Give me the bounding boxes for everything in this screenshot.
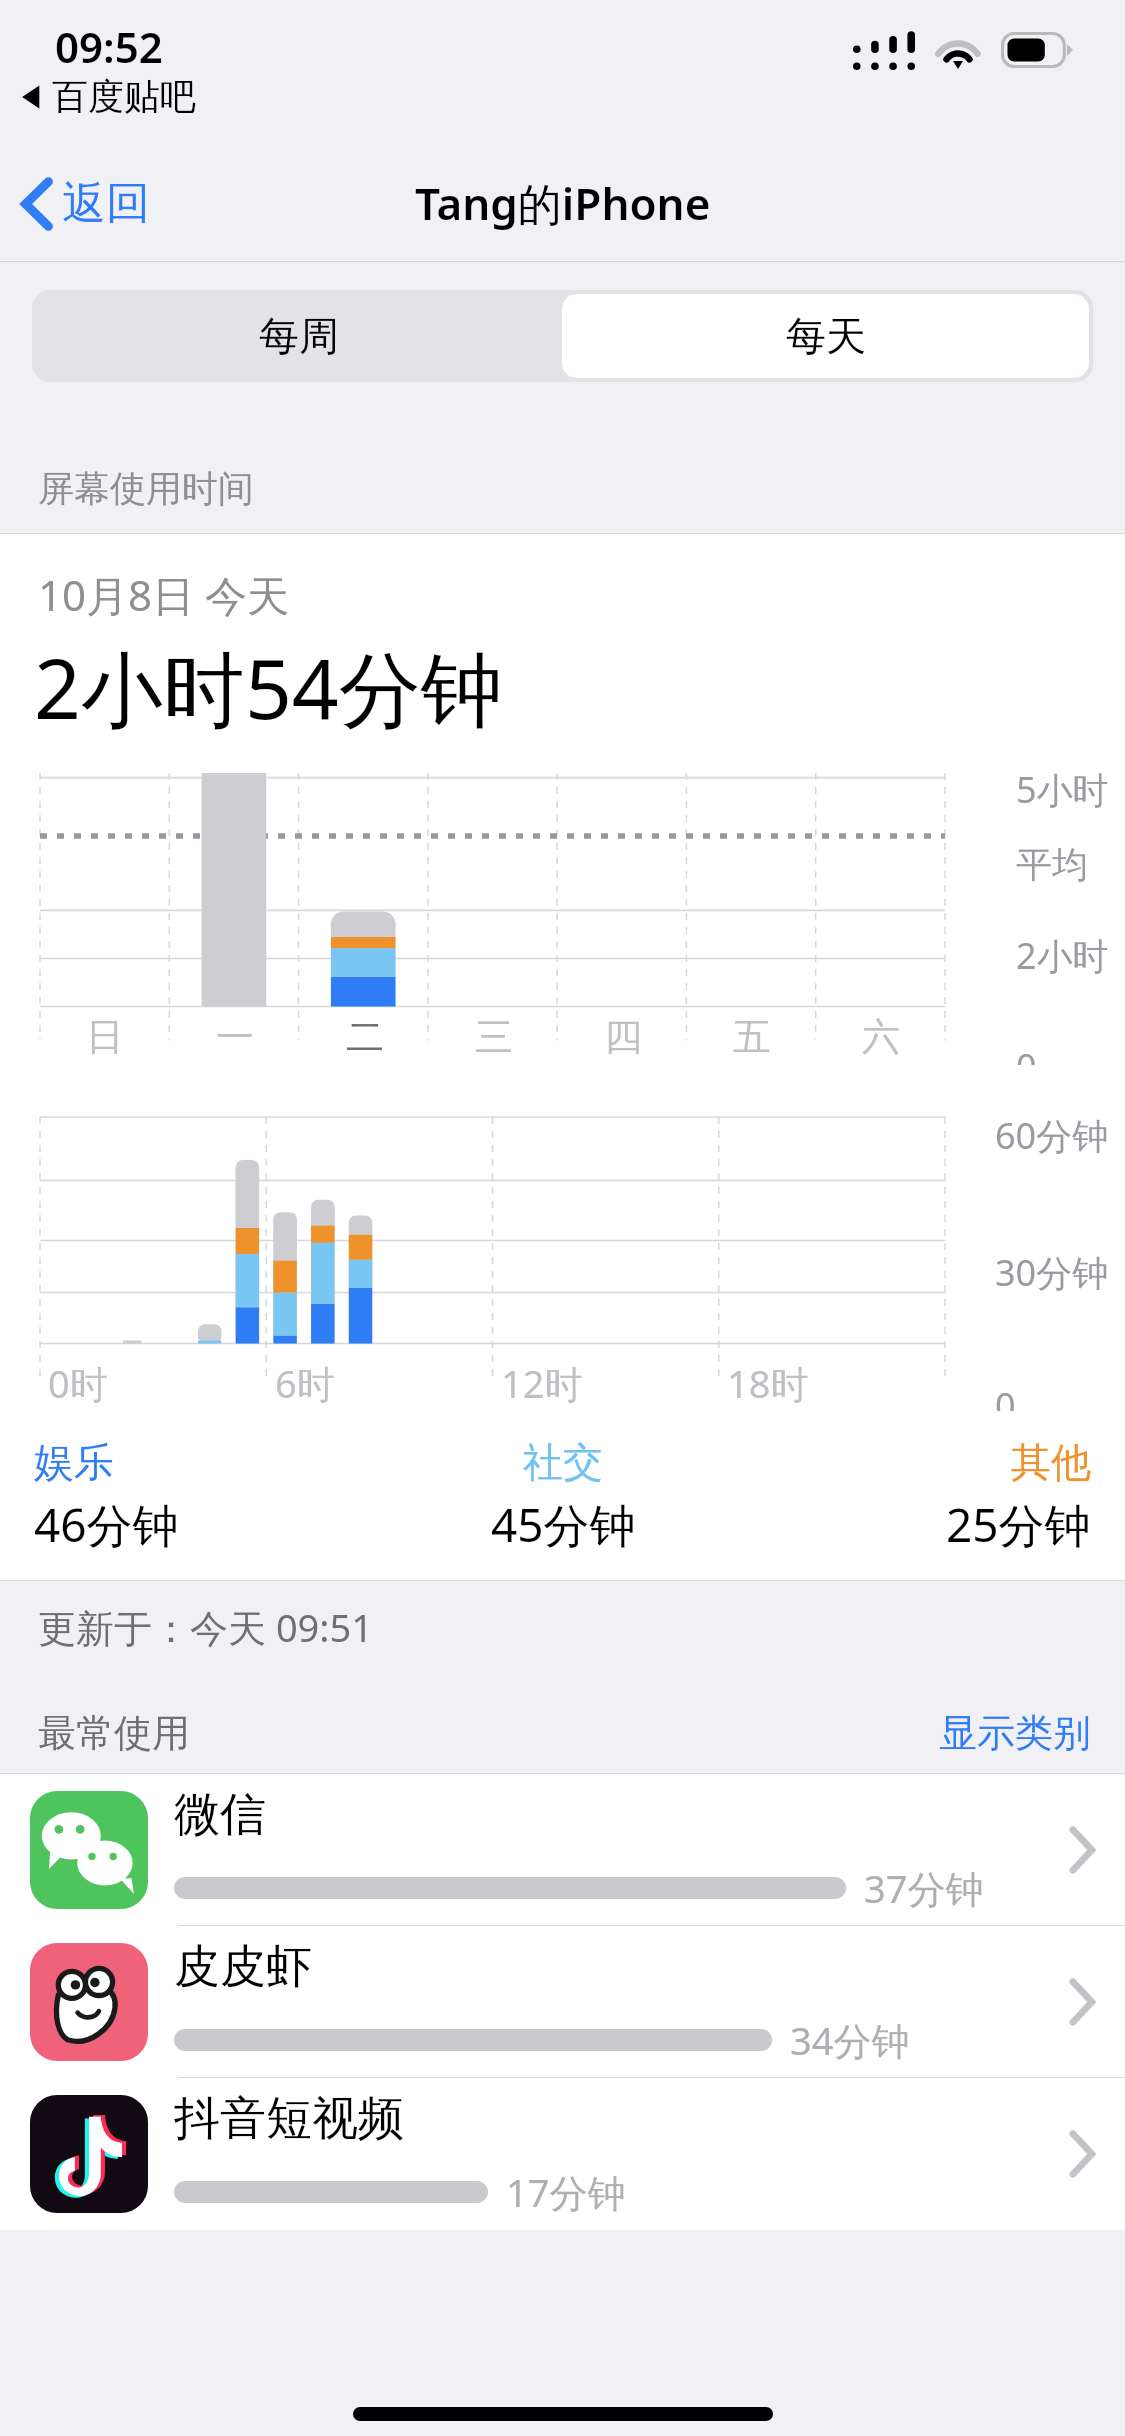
staticText: 17分钟	[506, 2166, 626, 2218]
staticText: 屏幕使用时间	[38, 466, 254, 511]
staticText: 18时	[727, 1357, 809, 1409]
staticText: 09:52	[55, 18, 163, 75]
staticText: 二	[346, 1013, 384, 1061]
staticText: 平均	[1016, 842, 1088, 887]
staticText: 微信	[174, 1786, 266, 1844]
staticText: Tang的iPhone	[415, 173, 711, 233]
staticText: 抖音短视频	[174, 2090, 404, 2148]
button[interactable]: 皮皮虾	[0, 1926, 1125, 2078]
staticText: 2小时	[1016, 931, 1109, 980]
staticText: 0	[1016, 1042, 1037, 1065]
staticText: 社交	[523, 1437, 603, 1487]
staticText: 一	[216, 1013, 254, 1061]
staticText: 10月8日 今天	[38, 566, 289, 623]
staticText: 12时	[501, 1357, 583, 1409]
staticText: 五	[733, 1013, 771, 1061]
button[interactable]: 其他	[739, 1437, 1091, 1556]
staticText: 46分钟	[34, 1493, 179, 1556]
staticText: 其他	[1011, 1437, 1091, 1487]
staticText: 37分钟	[864, 1862, 984, 1914]
staticText: 更新于：今天 09:51	[38, 1601, 374, 1653]
button[interactable]: 娱乐	[34, 1437, 387, 1556]
button[interactable]: 返回	[0, 166, 174, 241]
staticText: 6时	[275, 1357, 335, 1409]
staticText: 每周	[259, 311, 339, 361]
staticText: 皮皮虾	[174, 1938, 312, 1996]
staticText: 三	[475, 1013, 513, 1061]
staticText: 六	[862, 1013, 900, 1061]
button[interactable]: 每周	[36, 294, 562, 378]
staticText: 娱乐	[34, 1437, 114, 1487]
staticText: 百度贴吧	[52, 74, 196, 119]
staticText: 25分钟	[946, 1493, 1091, 1556]
staticText: 日	[86, 1013, 124, 1061]
staticText: 0时	[48, 1357, 108, 1409]
staticText: 34分钟	[790, 2014, 910, 2066]
staticText: 0	[995, 1381, 1016, 1411]
button[interactable]: 每天	[562, 294, 1089, 378]
staticText: 45分钟	[491, 1493, 636, 1556]
button[interactable]: 抖音短视频	[0, 2078, 1125, 2230]
staticText: 返回	[62, 176, 150, 231]
staticText: 30分钟	[995, 1248, 1109, 1297]
staticText: 2小时54分钟	[34, 631, 503, 743]
staticText: 60分钟	[995, 1111, 1109, 1160]
staticText: 四	[604, 1013, 642, 1061]
staticText: 5小时	[1016, 765, 1109, 814]
staticText: 最常使用	[38, 1709, 190, 1757]
button[interactable]: 社交	[387, 1437, 739, 1556]
button[interactable]: 微信	[0, 1774, 1125, 1926]
staticText: 每天	[786, 311, 866, 361]
button[interactable]: 显示类别	[939, 1709, 1091, 1757]
